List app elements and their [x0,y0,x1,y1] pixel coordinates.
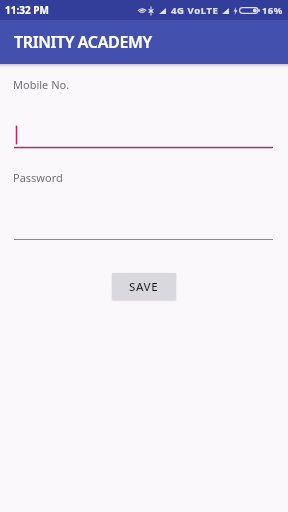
staticText: Mobile No. [13,77,70,92]
button[interactable]: Password [0,165,288,246]
staticText: 4G VoLTE [171,4,219,17]
staticText: 16% [262,4,283,17]
button[interactable]: SAVE [112,273,176,300]
staticText: Password [13,170,63,185]
button[interactable]: Mobile No. [0,72,288,152]
staticText: TRINITY ACADEMY [14,31,152,53]
staticText: SAVE [129,279,159,295]
staticText: 11:32 PM [5,3,49,17]
